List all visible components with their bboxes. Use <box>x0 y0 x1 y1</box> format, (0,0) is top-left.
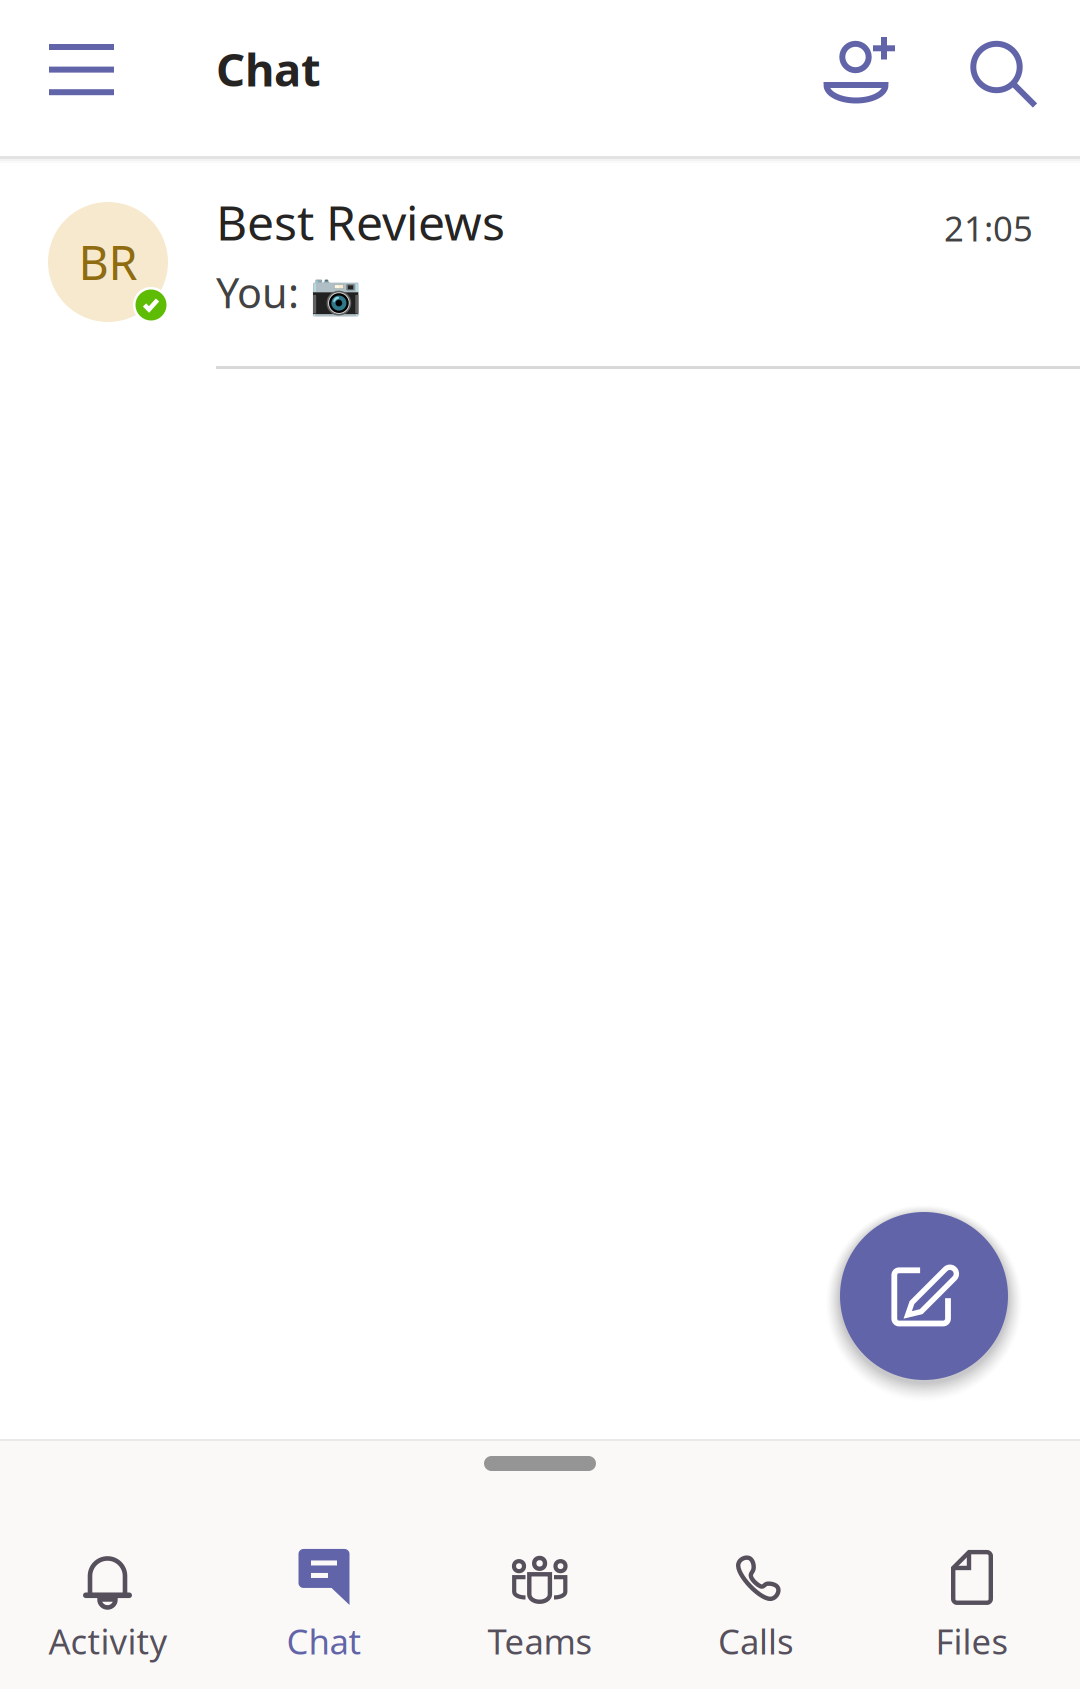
button[interactable]: BR <box>0 156 1080 369</box>
staticText: Teams <box>487 1618 592 1664</box>
staticText: Files <box>935 1618 1008 1664</box>
button[interactable]: Files <box>864 1541 1080 1664</box>
button[interactable]: Add people <box>823 0 898 156</box>
button[interactable]: Menu <box>0 0 216 156</box>
staticText: You: 📷 <box>216 265 361 320</box>
button[interactable]: Calls <box>648 1541 864 1664</box>
staticText: Calls <box>718 1618 794 1664</box>
button[interactable]: Activity <box>0 1541 216 1664</box>
button[interactable]: New chat <box>840 1212 1008 1380</box>
staticText: Activity <box>48 1618 167 1664</box>
staticText: Best Reviews <box>216 190 505 254</box>
staticText: Chat <box>286 1618 361 1664</box>
staticText: 21:05 <box>944 205 1033 251</box>
staticText: BR <box>78 231 137 293</box>
staticText: Chat <box>216 39 321 99</box>
button[interactable]: Chat <box>216 1541 432 1664</box>
button[interactable]: Teams <box>432 1541 648 1664</box>
button[interactable]: Search <box>898 0 1080 156</box>
